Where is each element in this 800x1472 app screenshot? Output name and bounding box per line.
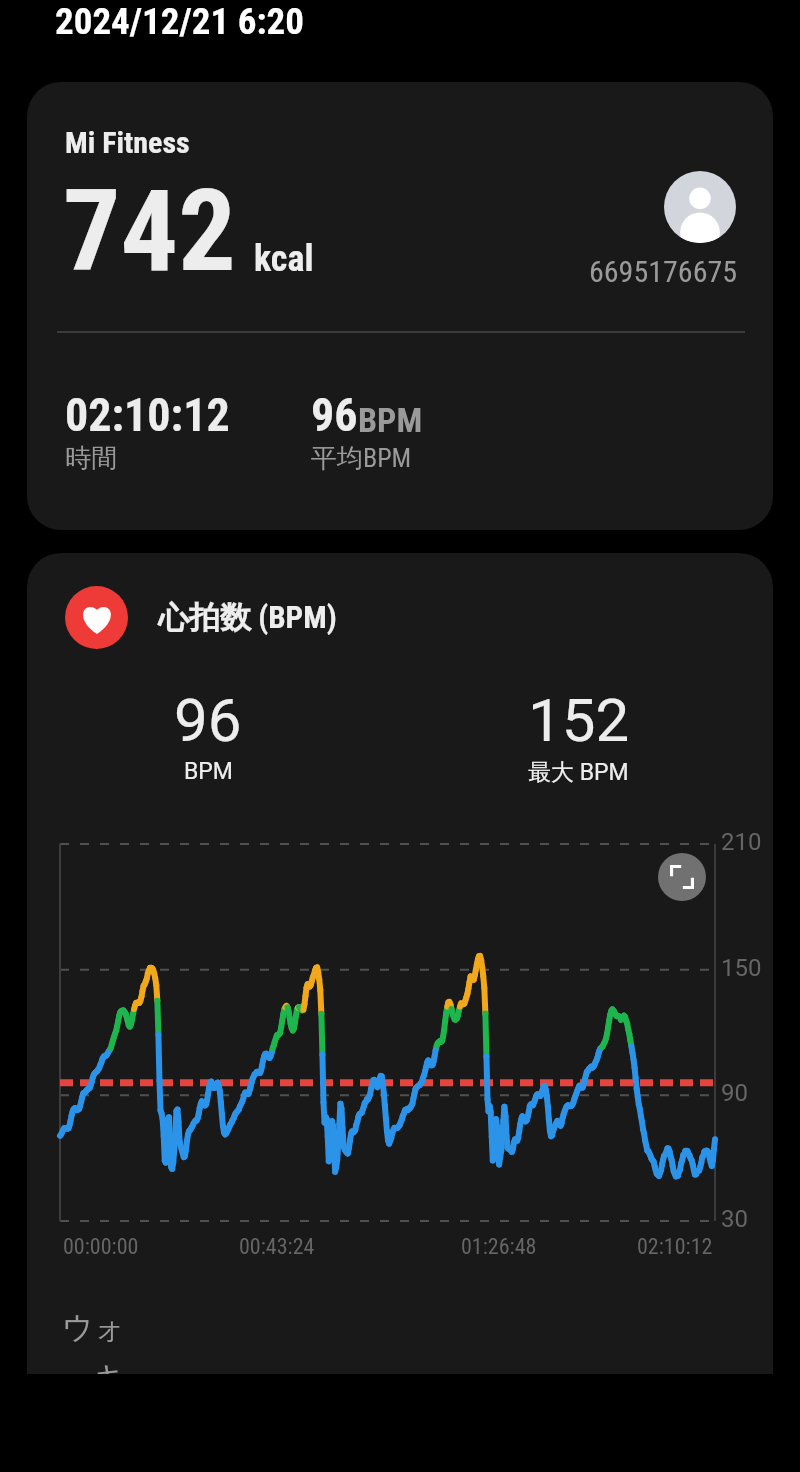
staticText: 02:10:12 bbox=[637, 1234, 757, 1260]
staticText: 150 bbox=[721, 954, 773, 982]
staticText: 2024/12/21 6:20 bbox=[55, 0, 304, 43]
staticText: 742 bbox=[63, 164, 236, 298]
staticText: 6695176675 bbox=[589, 254, 738, 289]
staticText: 02:10:12 bbox=[65, 388, 230, 442]
staticText: BPM bbox=[358, 400, 423, 440]
staticText: Mi Fitness bbox=[65, 125, 190, 160]
staticText: 心拍数 (BPM) bbox=[158, 598, 337, 637]
staticText: 96 bbox=[311, 388, 358, 442]
staticText: 152 bbox=[528, 685, 630, 755]
staticText: 時間 bbox=[65, 442, 117, 475]
staticText: 00:43:24 bbox=[239, 1234, 359, 1260]
button[interactable]: Heart rate bbox=[65, 586, 128, 649]
staticText: 最大 BPM bbox=[528, 758, 629, 787]
staticText: BPM bbox=[184, 758, 233, 785]
staticText: 90 bbox=[721, 1079, 773, 1107]
button[interactable]: Fullscreen bbox=[658, 853, 706, 901]
staticText: 01:26:48 bbox=[461, 1234, 581, 1260]
staticText: kcal bbox=[254, 238, 314, 280]
button[interactable]: Mi Fitness bbox=[27, 82, 773, 530]
staticText: ーキ bbox=[62, 1358, 125, 1397]
staticText: 00:00:00 bbox=[63, 1234, 183, 1260]
staticText: 96 bbox=[174, 685, 242, 755]
staticText: 30 bbox=[721, 1205, 773, 1233]
staticText: 210 bbox=[721, 828, 773, 856]
staticText: ウォ bbox=[62, 1308, 126, 1347]
staticText: 平均BPM bbox=[311, 442, 412, 475]
